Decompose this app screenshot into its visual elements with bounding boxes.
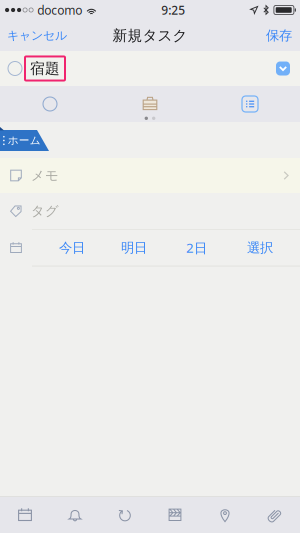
staticText: 新規タスク xyxy=(112,26,187,44)
button[interactable]: 2日 xyxy=(165,230,228,266)
staticText: 2日 xyxy=(186,239,207,256)
staticText: 宿題 xyxy=(30,59,60,77)
button[interactable]: タグ xyxy=(0,193,300,229)
button[interactable]: キャンセル xyxy=(0,20,74,51)
button[interactable]: List xyxy=(200,86,300,122)
staticText: キャンセル xyxy=(7,28,67,43)
staticText: docomo xyxy=(37,2,82,18)
button[interactable]: メモ xyxy=(0,158,300,193)
button[interactable]: ホーム xyxy=(0,127,50,151)
staticText: メモ xyxy=(31,167,59,184)
staticText: 9:25 xyxy=(161,2,185,18)
button[interactable]: More options xyxy=(276,61,290,75)
button[interactable]: Location xyxy=(200,497,250,533)
button[interactable]: 明日 xyxy=(103,230,165,266)
staticText: 明日 xyxy=(121,239,147,256)
button[interactable]: Repeat xyxy=(100,497,150,533)
button[interactable]: Priority xyxy=(0,86,100,122)
button[interactable]: 選択 xyxy=(228,230,292,266)
staticText: 今日 xyxy=(59,239,85,256)
staticText: 保存 xyxy=(266,27,292,44)
button[interactable]: Media xyxy=(150,497,200,533)
button[interactable]: 保存 xyxy=(258,20,300,51)
staticText: 選択 xyxy=(247,239,273,256)
button[interactable]: Project xyxy=(100,86,200,122)
button[interactable]: Attachment xyxy=(250,497,300,533)
button[interactable]: 今日 xyxy=(41,230,103,266)
staticText: タグ xyxy=(31,203,59,219)
button[interactable]: Due date xyxy=(0,497,50,533)
button[interactable]: Reminder xyxy=(50,497,100,533)
staticText: ホーム xyxy=(8,134,41,147)
